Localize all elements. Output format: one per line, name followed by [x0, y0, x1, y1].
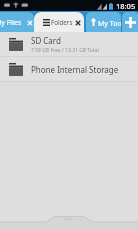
- staticText: My Files: [0, 18, 22, 28]
- button[interactable]: My Tools: [86, 12, 121, 32]
- staticText: Folders: [51, 18, 73, 26]
- button[interactable]: Show toolbar: [0, 212, 138, 230]
- staticText: 7.58 GB Free / 13.31 GB Total: [31, 47, 99, 54]
- button[interactable]: New tab: [122, 12, 138, 32]
- staticText: SD Card: [31, 35, 61, 46]
- button[interactable]: Phone Internal Storage: [0, 57, 138, 81]
- staticText: My Tools: [98, 19, 121, 29]
- staticText: 18:05: [116, 1, 136, 11]
- staticText: Phone Internal Storage: [31, 64, 119, 75]
- button[interactable]: SD Card: [0, 32, 138, 56]
- button[interactable]: Folders: [34, 12, 84, 32]
- button[interactable]: My Files: [0, 12, 34, 32]
